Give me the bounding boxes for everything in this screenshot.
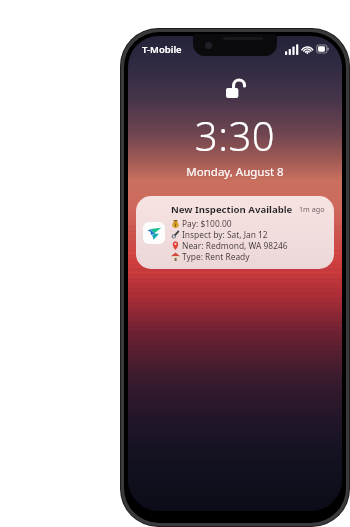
staticText: T-Mobile: [142, 43, 182, 56]
staticText: 3:30: [128, 108, 342, 162]
other: Inspection app: [143, 222, 165, 244]
staticText: Pay: $100.00: [182, 218, 232, 229]
staticText: Type: Rent Ready: [182, 251, 250, 262]
staticText: Monday, August 8: [128, 164, 342, 180]
staticText: 1m ago: [299, 204, 325, 214]
button[interactable]: Inspection app: [136, 196, 334, 269]
staticText: Near: Redmond, WA 98246: [182, 240, 288, 251]
other: Unlocked: [225, 76, 245, 98]
other: Signal, Wi-Fi and battery status: [285, 43, 329, 55]
staticText: New Inspection Available: [171, 203, 295, 216]
staticText: Inspect by: Sat, Jan 12: [182, 229, 268, 240]
